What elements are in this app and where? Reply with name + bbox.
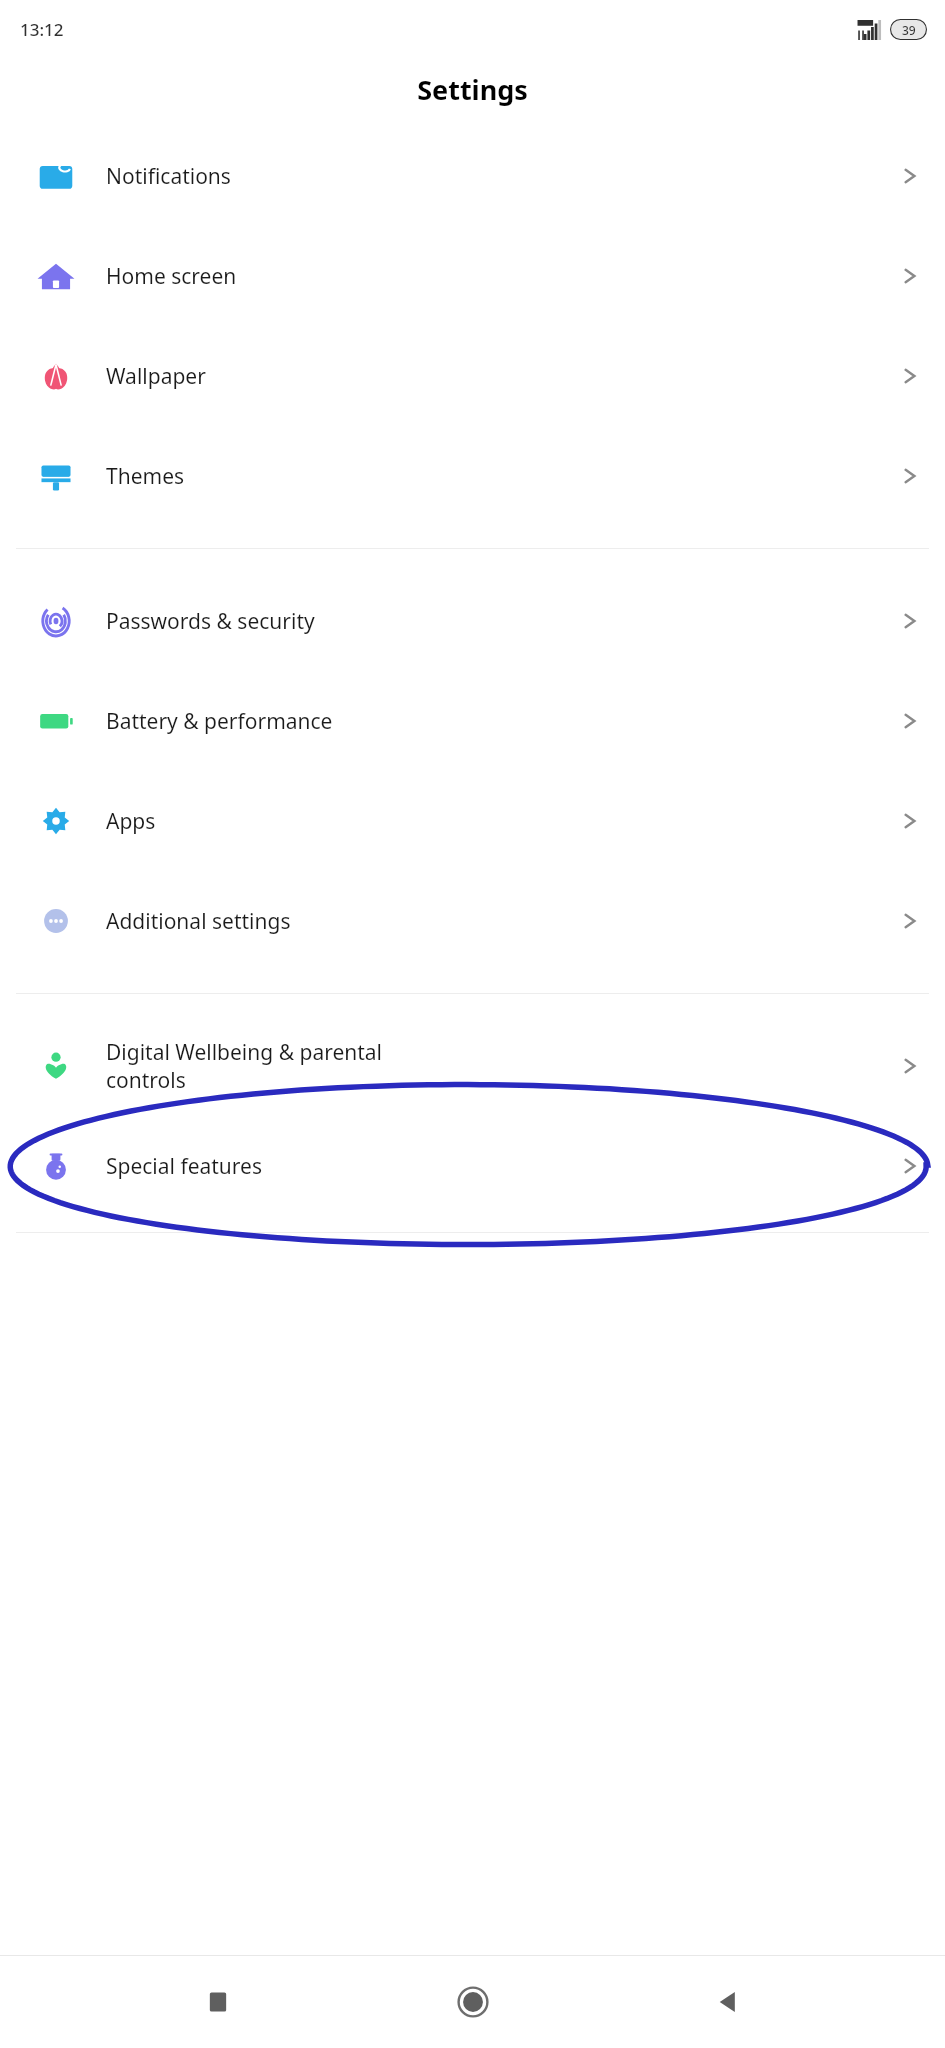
staticText: Special features: [106, 1152, 899, 1181]
staticText: Themes: [106, 462, 899, 491]
staticText: Wallpaper: [106, 362, 899, 391]
staticText: 13:12: [20, 18, 64, 41]
staticText: Notifications: [106, 162, 899, 191]
button[interactable]: Wallpaper: [0, 326, 945, 426]
staticText: Digital Wellbeing & parental controls: [106, 1038, 899, 1094]
staticText: Apps: [106, 807, 899, 836]
button[interactable]: Battery & performance: [0, 671, 945, 771]
button[interactable]: Recent apps: [181, 1965, 255, 2039]
staticText: Additional settings: [106, 907, 899, 936]
button[interactable]: Home: [436, 1965, 510, 2039]
button[interactable]: Back: [690, 1965, 764, 2039]
staticText: Home screen: [106, 262, 899, 291]
button[interactable]: Apps: [0, 771, 945, 871]
button[interactable]: Special features: [0, 1116, 945, 1216]
button[interactable]: Additional settings: [0, 871, 945, 971]
button[interactable]: Themes: [0, 426, 945, 526]
staticText: Battery & performance: [106, 707, 899, 736]
button[interactable]: Notifications: [0, 126, 945, 226]
button[interactable]: Home screen: [0, 226, 945, 326]
button[interactable]: Digital Wellbeing & parental controls: [0, 1016, 945, 1116]
staticText: 39: [902, 22, 916, 38]
button[interactable]: Passwords & security: [0, 571, 945, 671]
staticText: Settings: [417, 71, 528, 108]
staticText: Passwords & security: [106, 607, 899, 636]
